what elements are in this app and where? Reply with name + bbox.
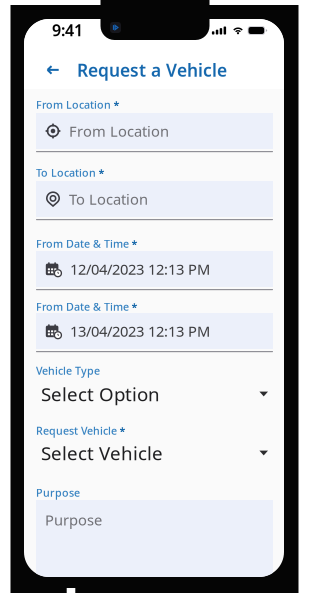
staticText: * (119, 424, 125, 438)
staticText: Vehicle Type (36, 363, 100, 378)
staticText: * (113, 98, 119, 112)
button[interactable]: 13/04/2023 12:13 PM (36, 313, 273, 352)
staticText: From Date & Time (36, 236, 129, 251)
staticText: From Location (36, 97, 111, 112)
staticText: 12/04/2023 12:13 PM (70, 259, 210, 279)
button[interactable]: Purpose (36, 500, 273, 590)
staticText: From Date & Time (36, 299, 129, 314)
button[interactable]: Select Option (36, 383, 273, 405)
staticText: * (131, 237, 137, 251)
staticText: From Location (69, 121, 169, 141)
staticText: Purpose (45, 510, 102, 529)
button[interactable]: To Location (36, 181, 273, 220)
staticText: Select Vehicle (41, 441, 163, 465)
staticText: Purpose (36, 485, 80, 500)
button[interactable]: From Location (36, 113, 273, 152)
button[interactable]: Select Vehicle (36, 442, 273, 464)
staticText: * (131, 300, 137, 314)
staticText: Request a Vehicle (77, 58, 227, 81)
button[interactable]: 12/04/2023 12:13 PM (36, 251, 273, 290)
staticText: Request Vehicle (36, 423, 117, 438)
staticText: 9:41 (52, 19, 83, 41)
staticText: 13/04/2023 12:13 PM (70, 321, 210, 341)
staticText: * (98, 166, 104, 180)
staticText: To Location (69, 189, 148, 209)
staticText: Select Option (41, 382, 160, 406)
staticText: To Location (36, 165, 96, 180)
button[interactable]: Back (36, 55, 70, 85)
